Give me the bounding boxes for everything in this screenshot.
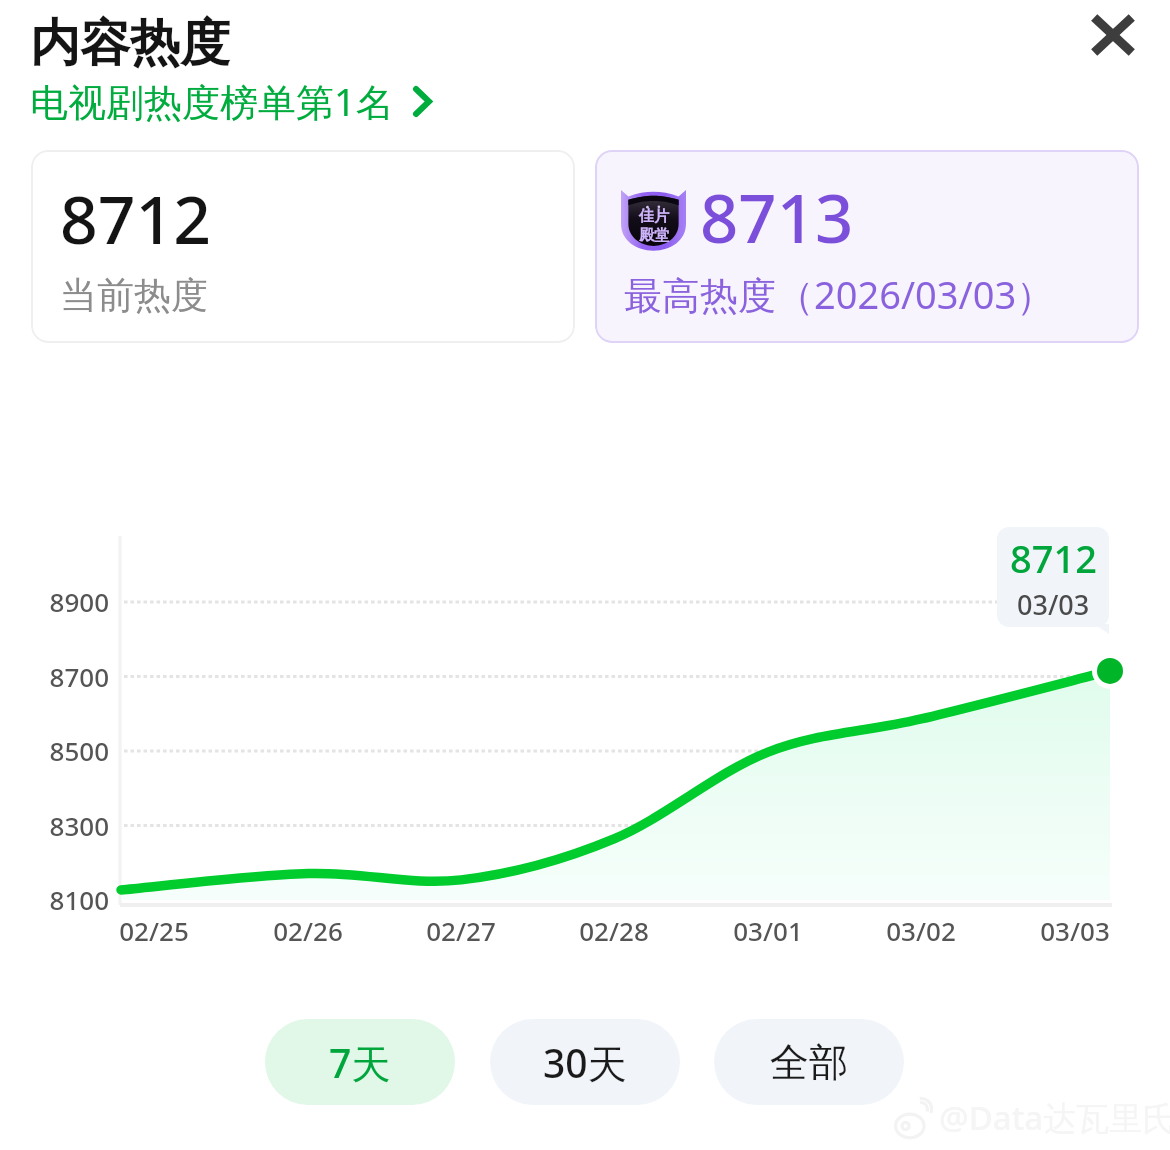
staticText: 03/01 [733, 913, 803, 948]
staticText: 02/27 [426, 913, 496, 948]
staticText: 内容热度 [30, 12, 230, 75]
button[interactable]: Close [1073, 0, 1152, 70]
staticText: 最高热度（2026/03/03） [624, 268, 1055, 320]
staticText: 03/02 [886, 913, 956, 948]
staticText: 全部 [770, 1038, 848, 1087]
button[interactable]: 佳片 [595, 150, 1139, 343]
staticText: 30天 [543, 1036, 627, 1089]
staticText: 8100 [49, 882, 109, 917]
button[interactable]: 电视剧热度榜单第1名 [30, 75, 434, 127]
staticText: 02/28 [579, 913, 649, 948]
staticText: 8500 [49, 733, 109, 768]
staticText: 佳片 [639, 207, 669, 226]
staticText: 02/26 [273, 913, 343, 948]
staticText: 03/03 [1017, 586, 1090, 623]
staticText: 8712 [60, 173, 212, 263]
staticText: 当前热度 [60, 272, 208, 319]
staticText: 8300 [49, 808, 109, 843]
staticText: 03/03 [1040, 913, 1110, 948]
button[interactable]: 全部 [714, 1019, 904, 1105]
button[interactable]: 30天 [490, 1019, 680, 1105]
staticText: @Data达瓦里氏 [939, 1095, 1170, 1140]
staticText: 7天 [329, 1036, 391, 1089]
staticText: 殿堂 [639, 226, 669, 245]
staticText: 8712 [1010, 532, 1097, 584]
staticText: 02/25 [119, 913, 189, 948]
staticText: 8900 [49, 584, 109, 619]
staticText: 电视剧热度榜单第1名 [30, 75, 394, 127]
button[interactable]: 7天 [265, 1019, 455, 1105]
staticText: 8713 [700, 171, 854, 262]
staticText: 8700 [49, 659, 109, 694]
button[interactable]: 8712 [31, 150, 575, 343]
